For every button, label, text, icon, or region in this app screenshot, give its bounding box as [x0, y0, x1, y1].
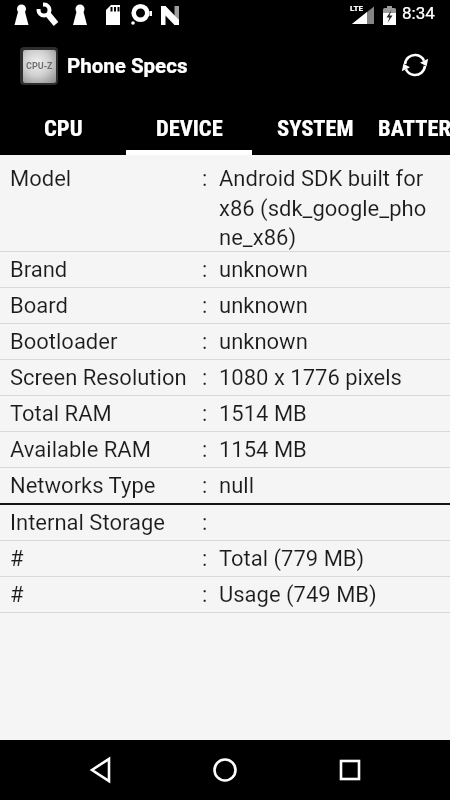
staticText: Available RAM	[10, 437, 202, 463]
staticText: Total (779 MB)	[219, 546, 365, 572]
staticText: unknown	[219, 293, 308, 319]
staticText: unknown	[219, 257, 308, 283]
button[interactable]	[336, 756, 364, 784]
button[interactable]: #	[0, 541, 450, 576]
staticText: :	[202, 582, 208, 608]
button[interactable]: Bootloader	[0, 324, 450, 359]
button[interactable]: Model	[0, 155, 450, 251]
button[interactable]	[211, 756, 239, 784]
staticText: Bootloader	[10, 329, 202, 355]
staticText: Internal Storage	[10, 510, 202, 536]
button[interactable]: Brand	[0, 252, 450, 287]
staticText: :	[202, 546, 208, 572]
staticText: Usage (749 MB)	[219, 582, 377, 608]
button[interactable]: #	[0, 577, 450, 612]
staticText: Total RAM	[10, 401, 202, 427]
staticText: :	[202, 166, 208, 192]
staticText: null	[219, 473, 254, 499]
staticText: LTE	[350, 4, 363, 13]
staticText: Android SDK built for x86 (sdk_google_ph…	[219, 166, 427, 251]
button[interactable]	[88, 756, 116, 784]
button[interactable]: Internal Storage	[0, 505, 450, 540]
staticText: BATTERY	[378, 115, 450, 141]
staticText: :	[202, 473, 208, 499]
button[interactable]: Available RAM	[0, 432, 450, 467]
button[interactable]: DEVICE	[126, 100, 252, 155]
staticText: 8:34	[402, 3, 435, 23]
staticText: Brand	[10, 257, 202, 283]
staticText: :	[202, 257, 208, 283]
button[interactable]: Board	[0, 288, 450, 323]
button[interactable]	[401, 51, 429, 79]
staticText: :	[202, 437, 208, 463]
button[interactable]: CPU	[0, 100, 126, 155]
staticText: :	[202, 365, 208, 391]
staticText: Networks Type	[10, 473, 202, 499]
staticText: 1154 MB	[219, 437, 307, 463]
staticText: 1080 x 1776 pixels	[219, 365, 402, 391]
staticText: :	[202, 510, 208, 536]
staticText: unknown	[219, 329, 308, 355]
staticText: :	[202, 293, 208, 319]
button[interactable]: Networks Type	[0, 468, 450, 503]
staticText: SYSTEM	[277, 115, 354, 141]
staticText: 1514 MB	[219, 401, 307, 427]
button[interactable]: Screen Resolution	[0, 360, 450, 395]
staticText: :	[202, 329, 208, 355]
staticText: Screen Resolution	[10, 365, 202, 391]
staticText: Phone Specs	[67, 54, 188, 78]
staticText: CPU-Z	[26, 61, 53, 72]
staticText: Board	[10, 293, 202, 319]
button[interactable]: BATTERY	[378, 100, 450, 155]
staticText: Model	[10, 166, 202, 192]
staticText: :	[202, 401, 208, 427]
button[interactable]: Total RAM	[0, 396, 450, 431]
staticText: DEVICE	[156, 115, 223, 141]
button[interactable]: SYSTEM	[252, 100, 378, 155]
staticText: #	[10, 546, 202, 572]
staticText: CPU	[44, 115, 83, 141]
staticText: #	[10, 582, 202, 608]
